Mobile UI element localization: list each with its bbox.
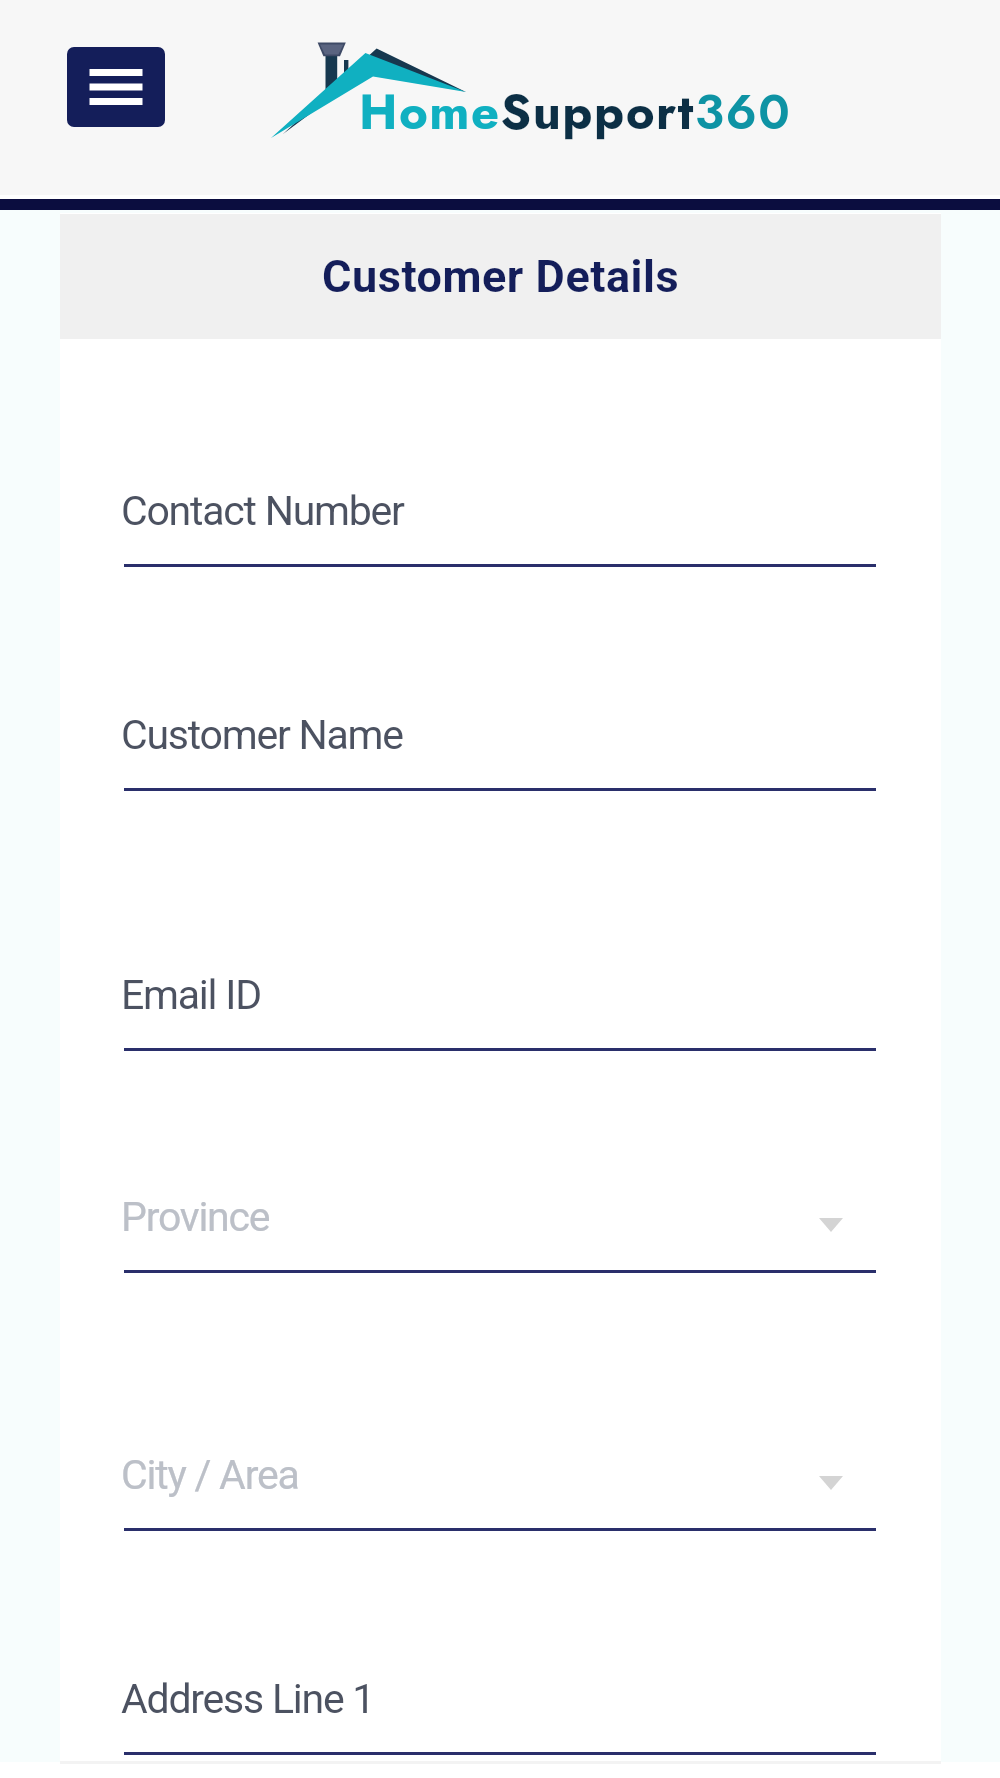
staticText: Email ID <box>121 971 261 1019</box>
button[interactable]: Open navigation menu <box>67 47 165 127</box>
staticText: HomeSupport360 <box>359 77 792 148</box>
staticText: Customer Details <box>322 250 680 303</box>
staticText: Province <box>121 1193 270 1241</box>
button[interactable]: Province <box>121 1171 876 1274</box>
staticText: Customer Name <box>121 711 403 759</box>
button[interactable]: Customer Name <box>121 689 876 792</box>
button[interactable]: City / Area <box>121 1429 876 1532</box>
button[interactable]: Email ID <box>121 949 876 1052</box>
button[interactable]: Address Line 1 <box>121 1653 876 1756</box>
staticText: Address Line 1 <box>121 1675 375 1723</box>
staticText: City / Area <box>121 1451 299 1499</box>
staticText: Contact Number <box>121 487 404 535</box>
button[interactable]: Contact Number <box>121 465 876 568</box>
